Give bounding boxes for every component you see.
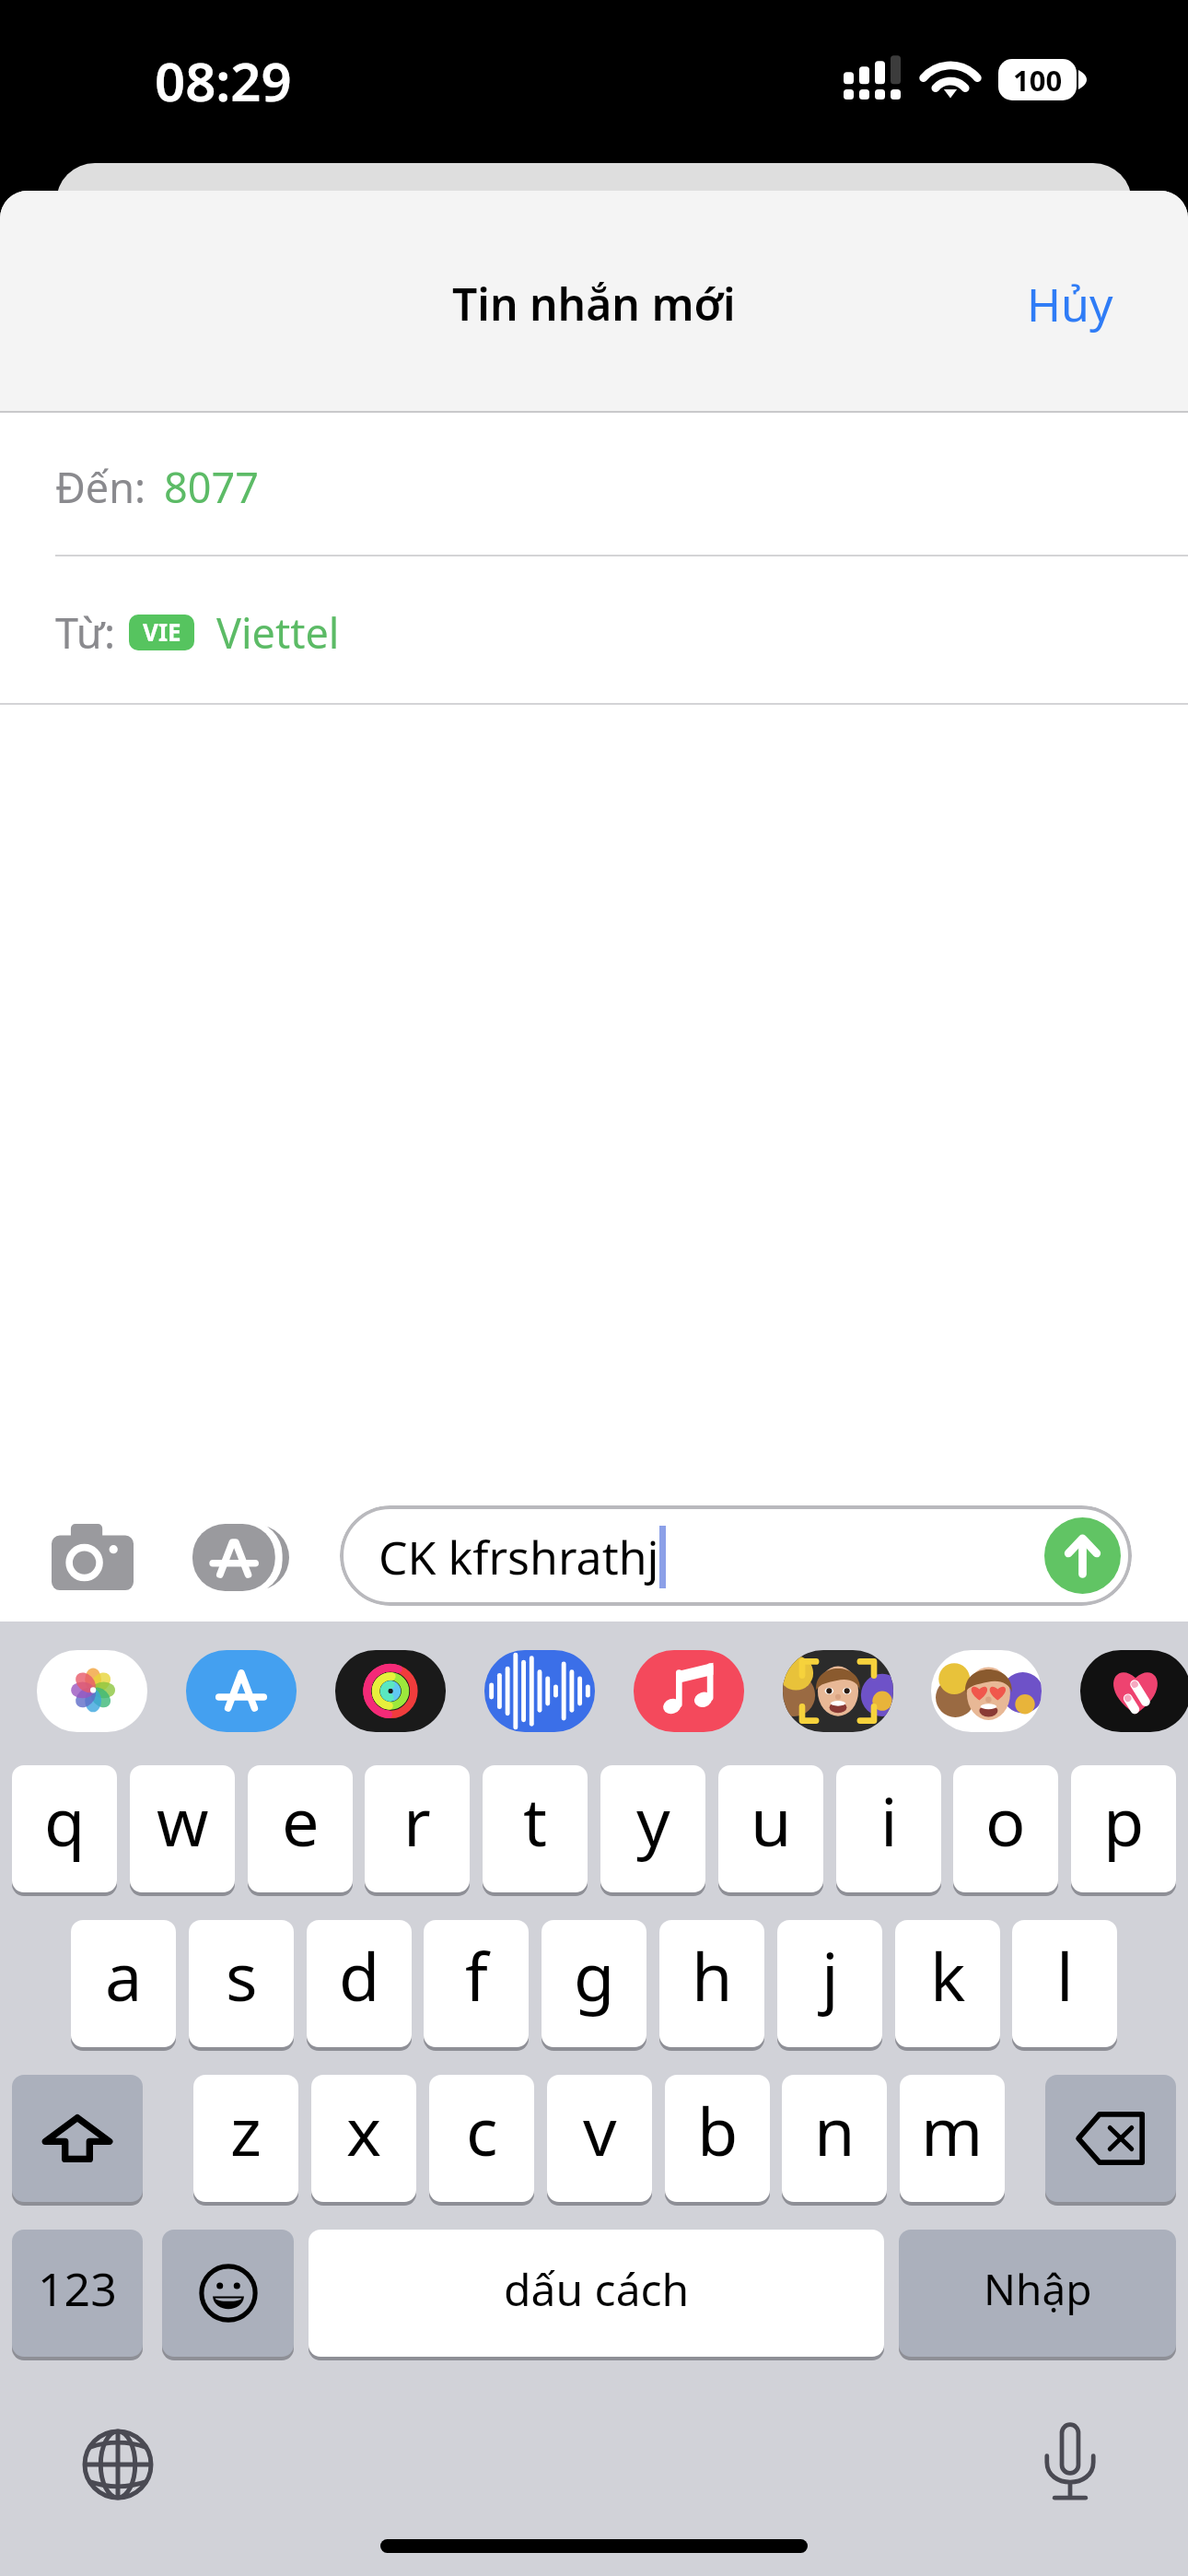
button[interactable]: Hủy <box>990 256 1188 352</box>
button[interactable]: m <box>900 2075 1005 2202</box>
staticText: i <box>880 1775 898 1866</box>
button[interactable]: q <box>12 1765 117 1892</box>
staticText: u <box>751 1775 792 1866</box>
button[interactable]: Apps <box>192 1524 289 1591</box>
button[interactable]: c <box>429 2075 534 2202</box>
button[interactable]: s <box>189 1920 294 2047</box>
button[interactable]: Fitness <box>335 1650 446 1732</box>
staticText: p <box>1103 1775 1145 1866</box>
button[interactable]: CK kfrshrathj <box>340 1505 1132 1606</box>
button[interactable]: k <box>895 1920 1000 2047</box>
staticText: Nhập <box>984 2260 1092 2318</box>
staticText: 100 <box>1013 61 1063 100</box>
staticText: VIE <box>143 615 181 648</box>
button[interactable]: d <box>307 1920 412 2047</box>
button[interactable]: p <box>1071 1765 1176 1892</box>
button[interactable]: h <box>659 1920 764 2047</box>
staticText: n <box>814 2085 856 2175</box>
staticText: y <box>636 1775 670 1866</box>
staticText: Hủy <box>1027 273 1113 335</box>
staticText: b <box>697 2085 739 2175</box>
button[interactable]: o <box>953 1765 1058 1892</box>
button[interactable]: Đến: <box>0 413 1188 556</box>
staticText: e <box>282 1775 320 1866</box>
button[interactable]: App Store <box>186 1650 297 1732</box>
button[interactable]: Photos <box>37 1650 147 1732</box>
staticText: f <box>465 1930 488 2020</box>
button[interactable]: x <box>311 2075 416 2202</box>
staticText: l <box>1056 1930 1074 2020</box>
button[interactable]: w <box>130 1765 235 1892</box>
button[interactable]: Camera <box>52 1524 134 1590</box>
staticText: c <box>466 2085 498 2175</box>
staticText: 8077 <box>164 459 259 515</box>
staticText: s <box>226 1930 258 2020</box>
button[interactable]: l <box>1012 1920 1117 2047</box>
button[interactable]: Health <box>1080 1650 1188 1732</box>
button[interactable]: j <box>777 1920 882 2047</box>
button[interactable]: r <box>365 1765 470 1892</box>
staticText: dấu cách <box>504 2259 690 2319</box>
staticText: w <box>157 1775 209 1866</box>
staticText: z <box>230 2085 262 2175</box>
button[interactable]: b <box>665 2075 770 2202</box>
staticText: Đến: <box>55 459 146 515</box>
staticText: o <box>985 1775 1026 1866</box>
button[interactable]: 123 <box>12 2230 143 2357</box>
staticText: v <box>583 2085 617 2175</box>
button[interactable]: g <box>542 1920 646 2047</box>
button[interactable]: e <box>248 1765 353 1892</box>
staticText: 123 <box>38 2257 117 2320</box>
button[interactable]: i <box>836 1765 941 1892</box>
button[interactable]: Music <box>634 1650 744 1732</box>
button[interactable]: dấu cách <box>309 2230 884 2357</box>
staticText: CK kfrshrathj <box>379 1526 659 1588</box>
button[interactable]: u <box>718 1765 823 1892</box>
staticText: x <box>346 2085 382 2175</box>
button[interactable]: t <box>483 1765 588 1892</box>
button[interactable]: Voice Memos <box>484 1650 595 1732</box>
button[interactable]: Delete <box>1045 2075 1176 2202</box>
button[interactable]: y <box>600 1765 705 1892</box>
button[interactable]: Emoji <box>162 2230 294 2357</box>
staticText: g <box>574 1930 615 2020</box>
button[interactable]: Shift <box>12 2075 143 2202</box>
button[interactable]: f <box>424 1920 529 2047</box>
button[interactable]: v <box>547 2075 652 2202</box>
staticText: r <box>403 1775 431 1866</box>
staticText: k <box>930 1930 966 2020</box>
staticText: 08:29 <box>155 44 292 117</box>
button[interactable]: Memoji Stickers <box>783 1650 893 1732</box>
staticText: d <box>339 1930 380 2020</box>
staticText: h <box>692 1930 733 2020</box>
staticText: Tin nhắn mới <box>452 274 736 334</box>
staticText: t <box>523 1775 547 1866</box>
staticText: Từ: <box>55 604 116 661</box>
button[interactable]: Từ: <box>0 556 1188 705</box>
button[interactable]: a <box>71 1920 176 2047</box>
staticText: Viettel <box>216 604 340 661</box>
staticText: q <box>44 1775 86 1866</box>
button[interactable]: z <box>193 2075 298 2202</box>
button[interactable]: Send <box>1044 1517 1121 1594</box>
button[interactable]: Change keyboard <box>81 2428 155 2501</box>
staticText: m <box>921 2085 984 2175</box>
button[interactable]: n <box>782 2075 887 2202</box>
button[interactable]: Nhập <box>899 2230 1176 2357</box>
staticText: a <box>105 1930 143 2020</box>
button[interactable]: Memoji <box>931 1650 1042 1732</box>
staticText: j <box>821 1930 839 2020</box>
button[interactable]: Dictation <box>1044 2423 1096 2501</box>
